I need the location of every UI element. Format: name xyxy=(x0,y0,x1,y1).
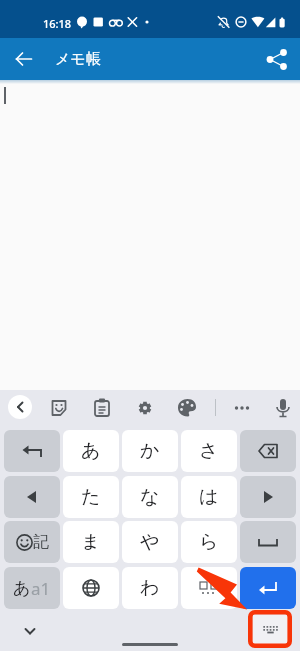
staticText: や xyxy=(140,530,160,554)
button[interactable]: Share xyxy=(261,43,293,75)
staticText: さ xyxy=(199,439,219,463)
button[interactable]: More options xyxy=(228,394,256,422)
button[interactable]: Move cursor left xyxy=(4,476,60,518)
staticText: あ xyxy=(13,578,31,599)
button[interactable]: や xyxy=(122,521,178,563)
button[interactable]: Themes xyxy=(173,394,201,422)
staticText: メモ帳 xyxy=(55,50,101,69)
button[interactable]: ま xyxy=(63,521,119,563)
button[interactable]: か xyxy=(122,430,178,472)
button[interactable]: Backspace xyxy=(240,430,296,472)
button[interactable]: わ xyxy=(122,567,178,609)
button[interactable]: Undo xyxy=(4,430,60,472)
button[interactable]: Move cursor right xyxy=(240,476,296,518)
button[interactable]: Hide keyboard xyxy=(18,619,42,643)
button[interactable]: Stickers xyxy=(45,394,73,422)
button[interactable]: た xyxy=(63,476,119,518)
staticText: た xyxy=(81,485,101,509)
staticText: 記 xyxy=(33,532,49,552)
staticText: わ xyxy=(140,576,160,600)
button[interactable]: Clipboard xyxy=(88,394,116,422)
button[interactable]: Enter xyxy=(240,567,296,609)
button[interactable]: Switch input mode xyxy=(4,567,60,609)
button[interactable]: Hide keyboard xyxy=(253,615,288,644)
button[interactable]: は xyxy=(181,476,237,518)
staticText: あ xyxy=(81,439,101,463)
button[interactable]: Back xyxy=(8,395,32,419)
button[interactable]: ら xyxy=(181,521,237,563)
button[interactable]: Settings xyxy=(131,394,159,422)
staticText: ら xyxy=(199,530,219,554)
staticText: 16:18 xyxy=(43,16,72,31)
button[interactable]: Space xyxy=(240,521,296,563)
staticText: な xyxy=(140,485,160,509)
button[interactable]: Change language xyxy=(63,567,119,609)
staticText: か xyxy=(140,439,160,463)
button[interactable]: Punctuation xyxy=(181,567,237,609)
button[interactable]: な xyxy=(122,476,178,518)
button[interactable]: Emoji and symbols xyxy=(4,521,60,563)
button[interactable]: さ xyxy=(181,430,237,472)
staticText: ま xyxy=(81,530,101,554)
staticText: は xyxy=(199,485,219,509)
button[interactable]: Voice input xyxy=(269,394,297,422)
button[interactable]: Back xyxy=(8,43,40,75)
button[interactable]: あ xyxy=(63,430,119,472)
staticText: a1 xyxy=(31,577,51,600)
